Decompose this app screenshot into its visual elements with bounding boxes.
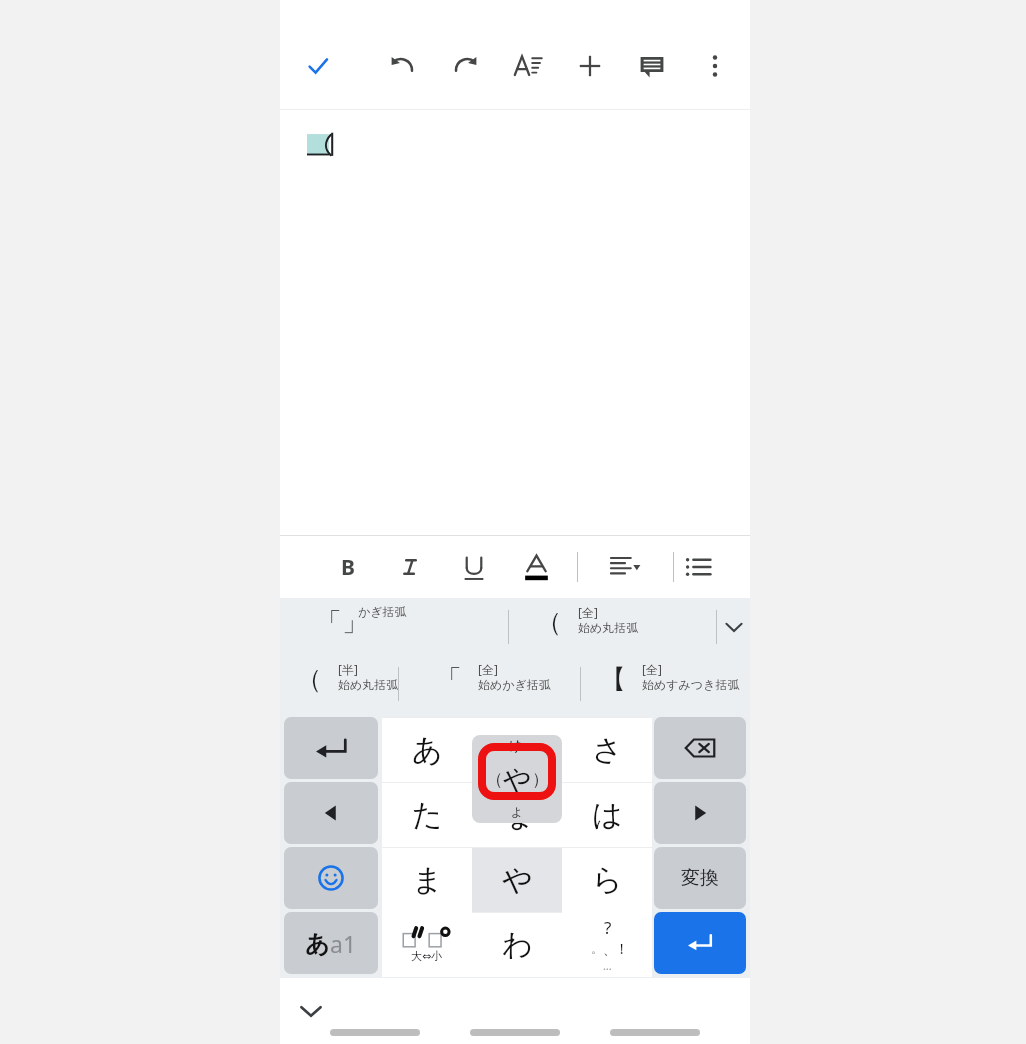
staticText: 変換	[681, 866, 719, 890]
staticText: [全]	[578, 604, 598, 620]
button[interactable]: Done	[298, 46, 338, 86]
staticText: 大⇔小	[411, 949, 443, 963]
staticText: （	[536, 606, 562, 639]
staticText: は	[592, 796, 623, 834]
button[interactable]: や	[472, 847, 562, 912]
staticText: や	[503, 762, 532, 797]
button[interactable]: 変換	[654, 847, 746, 909]
staticText: かぎ括弧	[358, 604, 407, 619]
button[interactable]: ?	[562, 912, 652, 977]
button[interactable]: Text color	[505, 536, 568, 598]
staticText: ）	[532, 769, 549, 790]
staticText: 「」	[316, 606, 368, 639]
staticText: !	[616, 939, 624, 958]
button[interactable]: Comment	[632, 46, 672, 86]
staticText: [全]	[642, 661, 662, 677]
button[interactable]: Italic	[379, 536, 442, 598]
staticText: わ	[502, 926, 533, 964]
staticText: ょ	[509, 802, 525, 821]
staticText: た	[412, 796, 443, 834]
staticText: [半]	[338, 661, 358, 677]
button[interactable]: わ	[472, 912, 562, 977]
staticText: ら	[592, 861, 623, 899]
staticText: a1	[330, 928, 357, 959]
button[interactable]: Cursor left	[284, 782, 378, 844]
button[interactable]: Underline	[442, 536, 505, 598]
staticText: 。	[591, 941, 603, 956]
button[interactable]: Redo	[445, 46, 485, 86]
staticText: ゆ	[509, 737, 525, 756]
staticText: 始めかぎ括弧	[478, 677, 551, 692]
button[interactable]: Backspace	[654, 717, 746, 779]
button[interactable]: More options	[695, 46, 735, 86]
staticText: …	[603, 958, 612, 973]
staticText: （	[486, 769, 503, 790]
button[interactable]: （	[516, 598, 716, 655]
staticText: な	[502, 796, 533, 834]
button[interactable]: ま	[382, 847, 472, 912]
staticText: 始めすみつき括弧	[642, 677, 740, 692]
button[interactable]: Cursor right	[654, 782, 746, 844]
button[interactable]: ら	[562, 847, 652, 912]
button[interactable]: は	[562, 782, 652, 847]
button[interactable]: あ	[284, 912, 378, 974]
staticText: 「	[436, 663, 462, 696]
staticText: B	[341, 553, 355, 582]
button[interactable]: Alignment	[586, 536, 664, 598]
staticText: 始め丸括弧	[578, 620, 639, 635]
staticText: （	[296, 663, 322, 696]
staticText: さ	[592, 731, 623, 769]
button[interactable]: あ	[382, 717, 472, 782]
staticText: [全]	[478, 661, 498, 677]
button[interactable]: Bulleted list	[682, 536, 714, 598]
button[interactable]: Enter	[654, 912, 746, 974]
button[interactable]: B	[316, 536, 379, 598]
button[interactable]: さ	[562, 717, 652, 782]
staticText: や	[502, 861, 533, 899]
button[interactable]: Format text	[508, 46, 548, 86]
staticText: 、	[603, 941, 616, 957]
staticText: あ	[412, 731, 443, 769]
staticText: あ	[305, 929, 330, 959]
button[interactable]: 「	[408, 655, 580, 713]
button[interactable]: （	[288, 655, 398, 713]
staticText: 始め丸括弧	[338, 677, 399, 692]
button[interactable]: 「」	[298, 598, 508, 655]
button[interactable]: Expand suggestions	[717, 598, 750, 655]
button[interactable]	[382, 912, 472, 977]
button[interactable]: Undo	[383, 46, 423, 86]
button[interactable]: Return / back	[284, 717, 378, 779]
staticText: か	[502, 731, 533, 769]
button[interactable]: Hide keyboard	[288, 988, 334, 1034]
button[interactable]: た	[382, 782, 472, 847]
button[interactable]: な	[472, 782, 562, 847]
button[interactable]: か	[472, 717, 562, 782]
button[interactable]: 大⇔小	[382, 912, 472, 977]
staticText: ま	[412, 861, 443, 899]
staticText: 【	[600, 663, 626, 696]
button[interactable]: Insert	[570, 46, 610, 86]
button[interactable]: 【	[590, 655, 750, 713]
button[interactable]: Emoji	[284, 847, 378, 909]
button[interactable]	[562, 912, 652, 977]
staticText: ?	[604, 916, 612, 939]
